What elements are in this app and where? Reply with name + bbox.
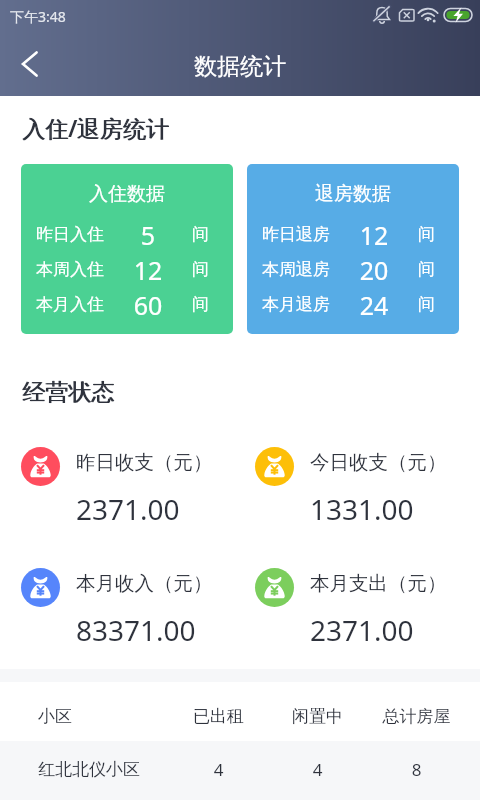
button[interactable]: 返回: [4, 38, 56, 90]
staticText: 间: [418, 224, 435, 245]
staticText: 间: [418, 294, 435, 315]
button[interactable]: 小区: [0, 682, 480, 741]
staticText: 本周入住: [36, 259, 104, 280]
staticText: 12: [104, 253, 192, 287]
staticText: 下午3:48: [10, 7, 66, 26]
staticText: 数据统计: [194, 52, 286, 81]
button[interactable]: 本月支出（元）: [234, 550, 480, 638]
staticText: 已出租: [169, 706, 268, 727]
button[interactable]: 红北北仪小区: [0, 741, 480, 800]
staticText: 经营状态: [23, 378, 115, 407]
staticText: 60: [104, 288, 192, 322]
staticText: 1331.00: [310, 490, 414, 528]
staticText: 4: [268, 758, 367, 781]
staticText: 闲置中: [268, 706, 367, 727]
staticText: 本月收入（元）: [76, 571, 213, 596]
staticText: 入住数据: [89, 182, 165, 206]
staticText: 总计房屋: [367, 706, 466, 727]
staticText: 2371.00: [310, 611, 414, 649]
staticText: 入住/退房统计: [23, 112, 170, 143]
button[interactable]: 入住数据: [21, 164, 233, 334]
staticText: 间: [192, 294, 209, 315]
staticText: 8: [367, 758, 466, 781]
staticText: 入住/退房统计: [22, 112, 169, 143]
staticText: 本月支出（元）: [310, 571, 447, 596]
staticText: 2371.00: [76, 490, 180, 528]
staticText: 间: [192, 224, 209, 245]
staticText: 本月退房: [262, 294, 330, 315]
staticText: 间: [192, 259, 209, 280]
staticText: 83371.00: [76, 611, 196, 649]
staticText: 12: [330, 218, 418, 252]
staticText: 今日收支（元）: [310, 450, 447, 475]
staticText: 本周退房: [262, 259, 330, 280]
staticText: 经营状态: [22, 378, 114, 407]
staticText: 20: [330, 253, 418, 287]
button[interactable]: 本月收入（元）: [0, 550, 234, 638]
staticText: 本月入住: [36, 294, 104, 315]
staticText: 24: [330, 288, 418, 322]
button[interactable]: 昨日收支（元）: [0, 429, 234, 517]
staticText: 小区: [38, 706, 72, 727]
staticText: 红北北仪小区: [38, 759, 140, 780]
staticText: 昨日收支（元）: [76, 450, 213, 475]
button[interactable]: 今日收支（元）: [234, 429, 480, 517]
staticText: 间: [418, 259, 435, 280]
staticText: 5: [104, 218, 192, 252]
staticText: 昨日入住: [36, 224, 104, 245]
button[interactable]: 退房数据: [247, 164, 459, 334]
staticText: 退房数据: [315, 182, 391, 206]
staticText: 4: [169, 758, 268, 781]
staticText: 昨日退房: [262, 224, 330, 245]
